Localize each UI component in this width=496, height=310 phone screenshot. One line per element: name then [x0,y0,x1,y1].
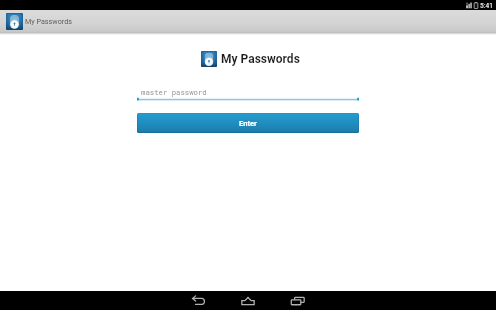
button[interactable]: My Passwords [0,10,80,33]
staticText: My Passwords [25,17,72,25]
button[interactable]: master password [137,87,359,101]
staticText: My Passwords [221,52,300,66]
button[interactable]: Home [233,291,263,310]
staticText: master password [141,87,207,97]
staticText: Enter [239,119,257,128]
staticText: 5:41 [480,1,493,10]
button[interactable]: Recents [283,291,313,310]
button[interactable]: Back [183,291,213,310]
button[interactable]: Enter [137,113,359,133]
